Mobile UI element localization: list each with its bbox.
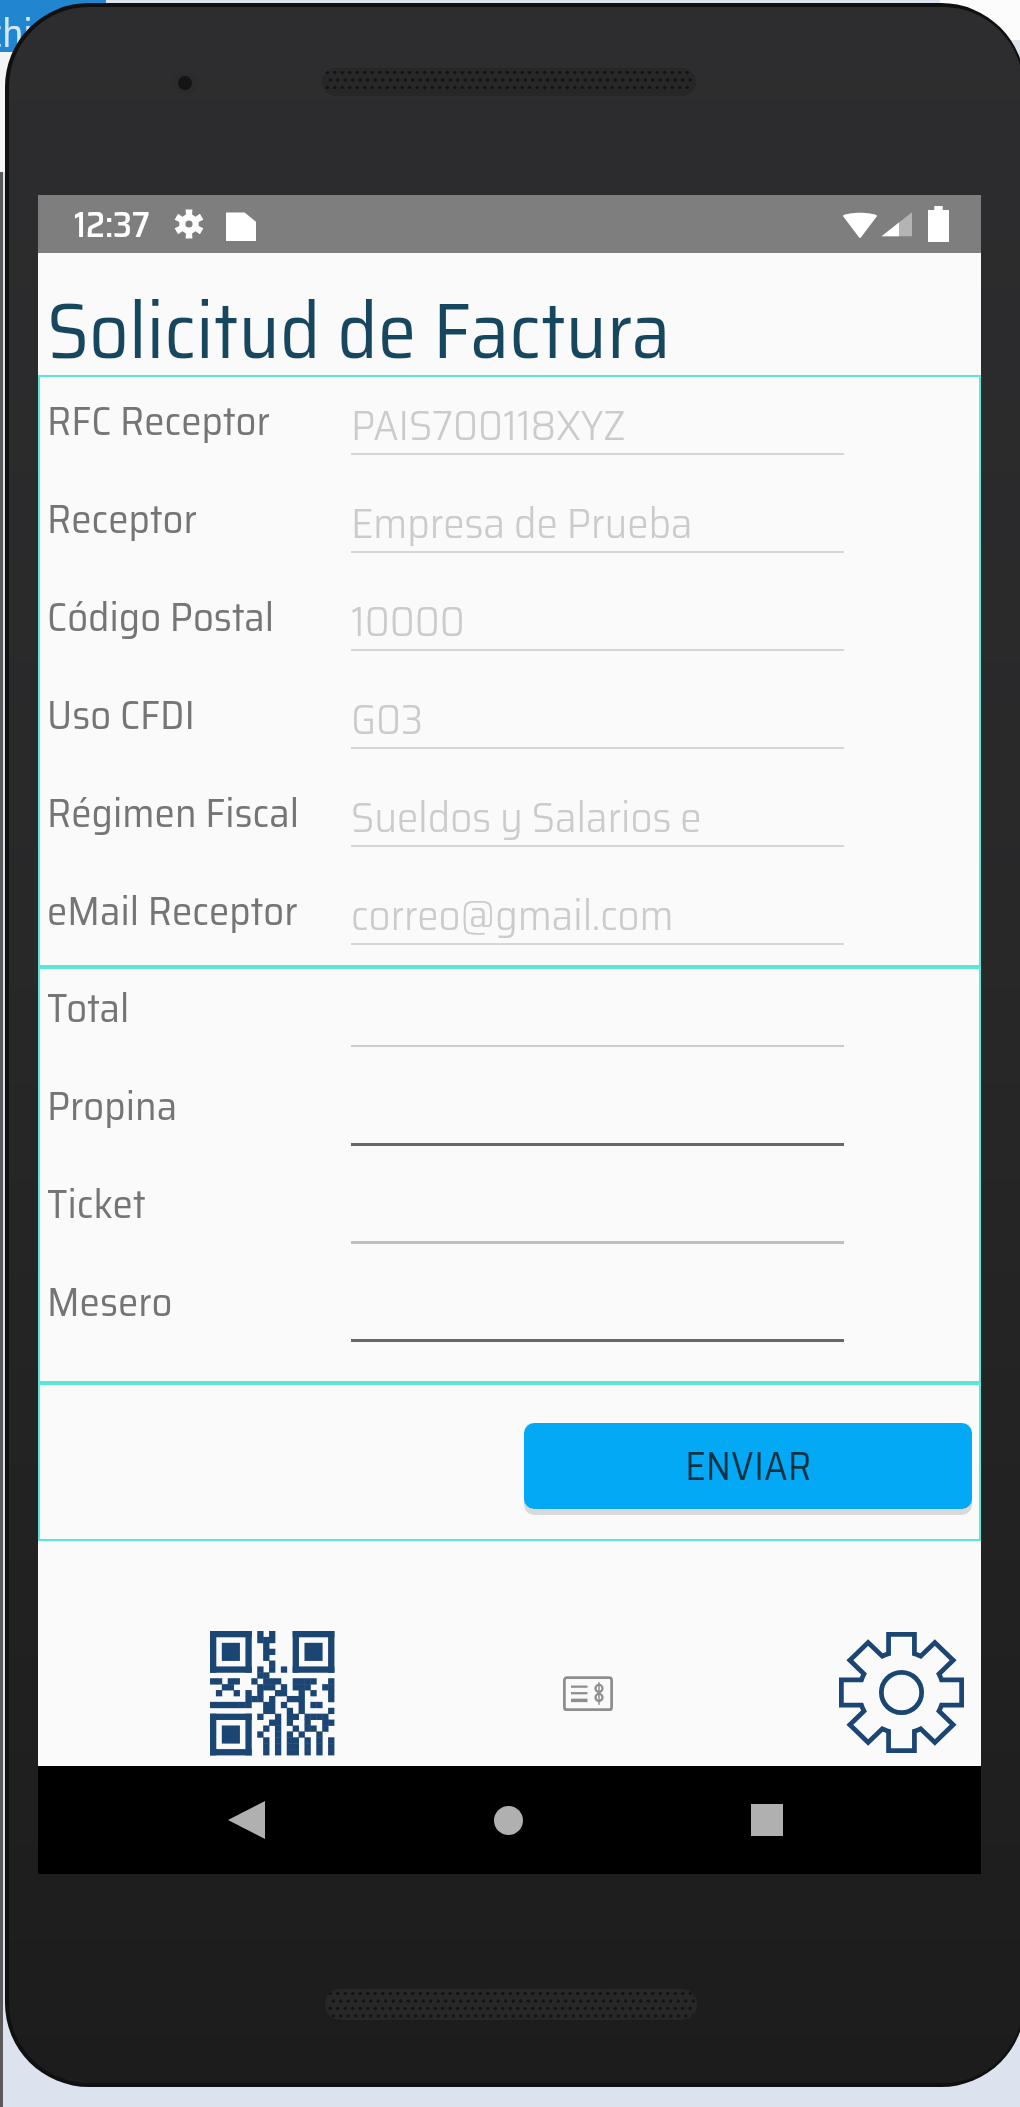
- button[interactable]: Régimen Fiscal: [40, 769, 979, 867]
- staticText: Mesero: [47, 1269, 173, 1334]
- staticText: Total: [47, 975, 130, 1040]
- button[interactable]: Uso CFDI: [40, 671, 979, 769]
- button[interactable]: Ticket: [40, 1165, 979, 1263]
- button[interactable]: ENVIAR: [524, 1423, 972, 1509]
- staticText: PAIS700118XYZ: [351, 391, 626, 459]
- button[interactable]: Ajustes: [819, 1611, 983, 1766]
- staticText: Ticket: [47, 1171, 146, 1236]
- staticText: correo@gmail.com: [351, 881, 674, 949]
- button[interactable]: eMail Receptor: [40, 867, 979, 965]
- button[interactable]: Mesero: [40, 1263, 979, 1361]
- staticText: eMail Receptor: [47, 878, 298, 943]
- button[interactable]: Receptor: [40, 475, 979, 573]
- button[interactable]: Recientes: [691, 1766, 843, 1874]
- staticText: RFC Receptor: [47, 388, 270, 453]
- button[interactable]: Escanear codigo QR: [190, 1611, 354, 1766]
- button[interactable]: Código Postal: [40, 573, 979, 671]
- staticText: G03: [351, 685, 424, 753]
- staticText: Receptor: [47, 486, 197, 551]
- button[interactable]: Total: [40, 969, 979, 1067]
- button[interactable]: Mis facturas: [518, 1641, 658, 1743]
- staticText: Propina: [47, 1073, 178, 1138]
- button[interactable]: RFC Receptor: [40, 377, 979, 475]
- staticText: Uso CFDI: [47, 682, 195, 747]
- staticText: ENVIAR: [685, 1435, 812, 1498]
- staticText: Régimen Fiscal: [47, 780, 300, 845]
- button[interactable]: Inicio: [433, 1766, 583, 1874]
- staticText: Solicitud de Factura: [47, 269, 671, 391]
- staticText: Sueldos y Salarios e: [351, 783, 702, 851]
- staticText: 10000: [351, 587, 465, 655]
- staticText: Código Postal: [47, 584, 275, 649]
- staticText: Empresa de Prueba: [351, 489, 693, 557]
- button[interactable]: Propina: [40, 1067, 979, 1165]
- button[interactable]: Atras: [173, 1766, 319, 1874]
- staticText: 12:37: [74, 196, 150, 253]
- staticText: chivo: [0, 2, 72, 54]
